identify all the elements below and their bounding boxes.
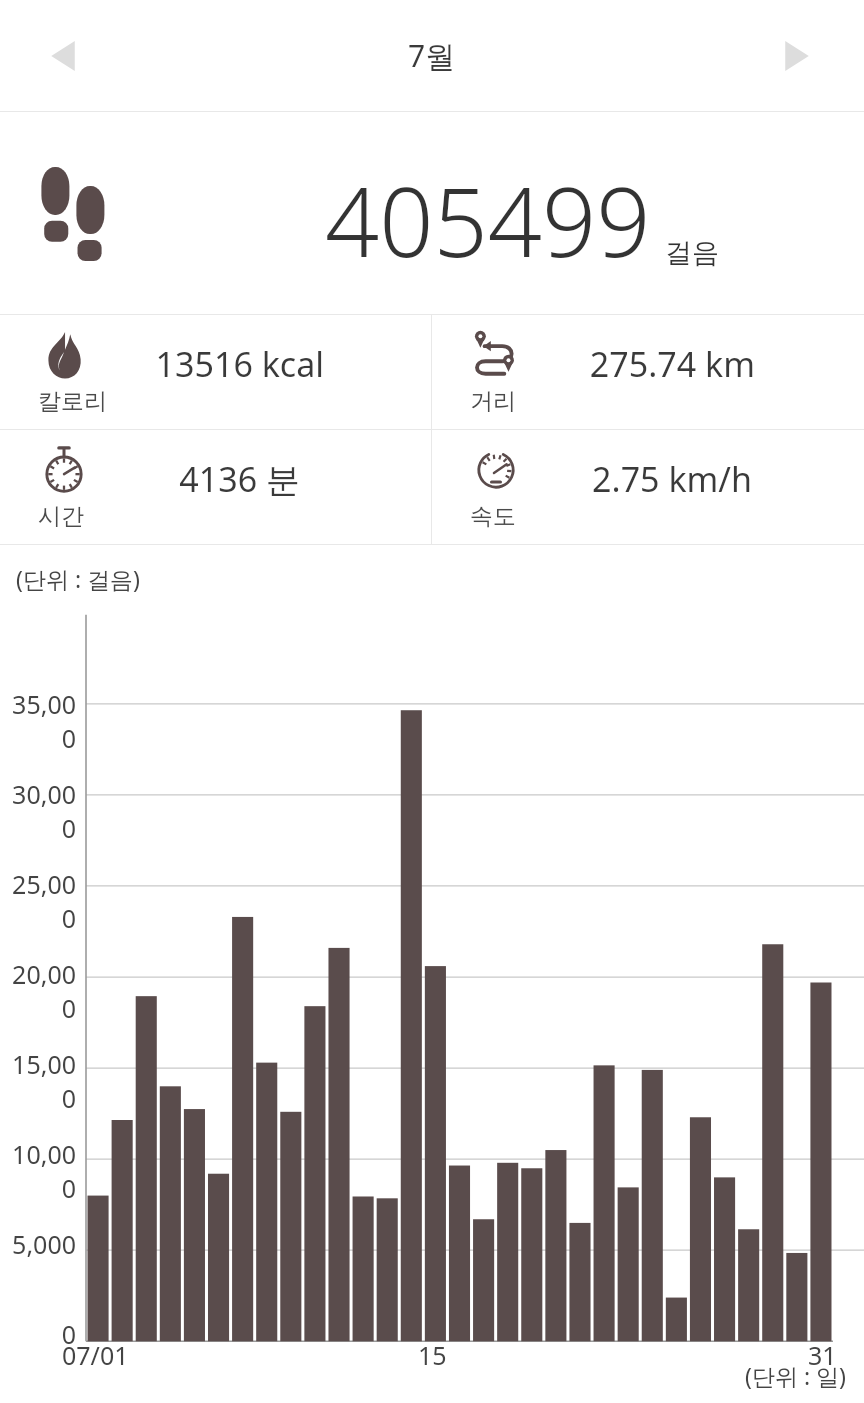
staticText: 5,000 [2,1227,76,1261]
staticText: 칼로리 [38,387,107,416]
button[interactable]: 칼로리 [0,315,431,429]
staticText: 07/01 [62,1338,129,1372]
button[interactable]: 속도 [432,430,864,544]
button[interactable]: 거리 [432,315,864,429]
staticText: 25,000 [2,867,76,935]
staticText: 30,000 [2,777,76,845]
staticText: 15,000 [2,1047,76,1115]
staticText: (단위 : 일) [745,1360,846,1391]
staticText: 15 [418,1338,447,1372]
button[interactable]: Previous month [20,13,106,99]
staticText: 시간 [38,502,84,531]
button[interactable]: 405499 [0,112,864,314]
button[interactable]: 시간 [0,430,431,544]
staticText: 4136 분 [179,456,300,502]
staticText: 거리 [470,387,516,416]
staticText: 31 [808,1338,837,1372]
staticText: 10,000 [2,1137,76,1205]
staticText: 35,000 [2,687,76,755]
staticText: 7월 [408,35,456,76]
staticText: 275.74 km [589,341,755,387]
staticText: 속도 [470,502,516,531]
staticText: 걸음 [665,236,719,270]
staticText: (단위 : 걸음) [16,563,140,594]
staticText: 20,000 [2,957,76,1025]
staticText: 2.75 km/h [592,456,752,502]
staticText: 405499 [325,155,651,284]
staticText: 0 [2,1317,76,1351]
button[interactable]: Next month [754,13,840,99]
staticText: 13516 kcal [155,341,324,387]
